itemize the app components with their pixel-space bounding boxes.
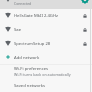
staticText: Saved networks [14,83,46,89]
staticText: SpectrumSetup 28 [14,41,83,47]
staticText: Wi-Fi turns back on automatically [14,72,71,77]
button[interactable]: Wi-Fi preferences [0,65,92,79]
staticText: Connected [14,1,32,6]
staticText: Wi-Fi preferences [14,66,49,72]
other: Network settings [81,0,89,4]
other: Secured network [83,14,87,18]
other: Secured network [83,28,87,32]
button[interactable]: HellsGate MkII 2.4GHz [0,9,92,23]
button[interactable]: Saved networks [0,79,92,92]
button[interactable]: Sae [0,23,92,37]
staticText: Sae [14,27,83,33]
button[interactable]: Add network [0,51,92,65]
staticText: Add network [14,55,40,61]
other: Secured network [83,42,87,46]
button[interactable]: SpectrumSetup 28 [0,37,92,51]
staticText: HellsGate MkII 2.4GHz [14,13,83,19]
button[interactable]: Connected [0,0,92,9]
